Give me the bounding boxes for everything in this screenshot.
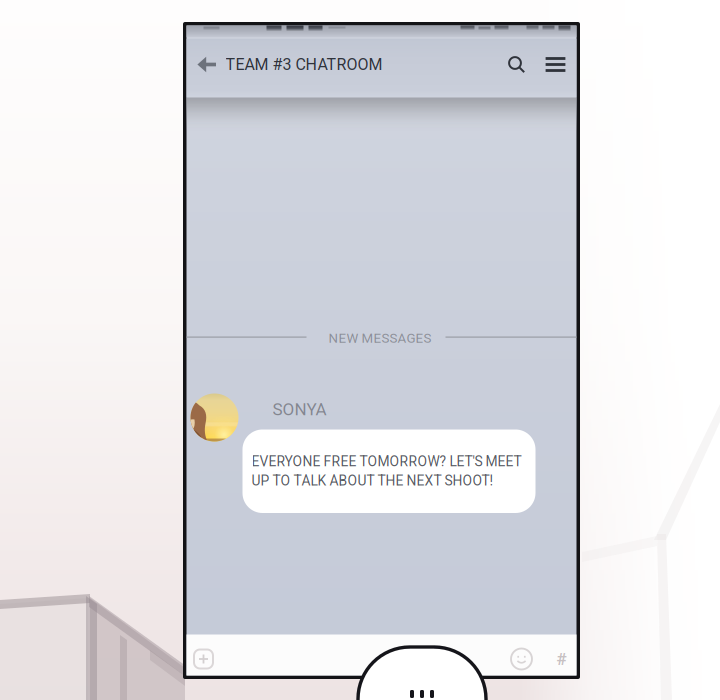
button[interactable]: Menu — [536, 44, 574, 84]
button[interactable]: Hashtag — [546, 638, 576, 679]
button[interactable]: Add attachment — [186, 638, 220, 679]
button[interactable]: Search — [497, 44, 535, 84]
staticText: NEW MESSAGES — [328, 330, 431, 346]
button[interactable]: Back — [189, 44, 223, 84]
staticText: TEAM #3 CHATROOM — [225, 55, 382, 74]
button[interactable]: TEAM #3 CHATROOM — [225, 44, 395, 84]
staticText: SONYA — [272, 399, 326, 419]
staticText: # — [556, 649, 566, 669]
button[interactable]: Emoji — [504, 638, 538, 679]
staticText: EVERYONE FREE TOMORROW? LET'S MEET UP TO… — [251, 453, 521, 489]
